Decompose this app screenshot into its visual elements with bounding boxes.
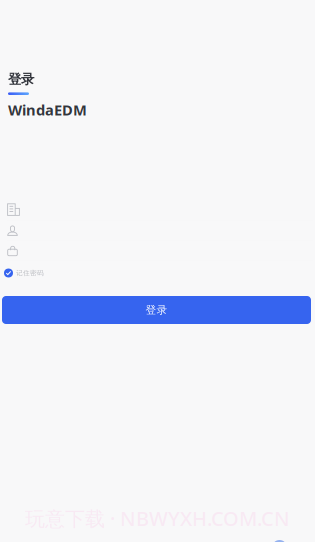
button[interactable]: 记住密码 [4, 267, 84, 279]
button[interactable]: 登录 [2, 296, 311, 324]
staticText: 登录 [8, 71, 34, 87]
staticText: 记住密码 [16, 269, 44, 277]
staticText: WindaEDM [8, 100, 87, 119]
staticText: 玩意下载 · NBWYXH.COM.CN [25, 505, 290, 532]
staticText: 登录 [145, 303, 167, 316]
